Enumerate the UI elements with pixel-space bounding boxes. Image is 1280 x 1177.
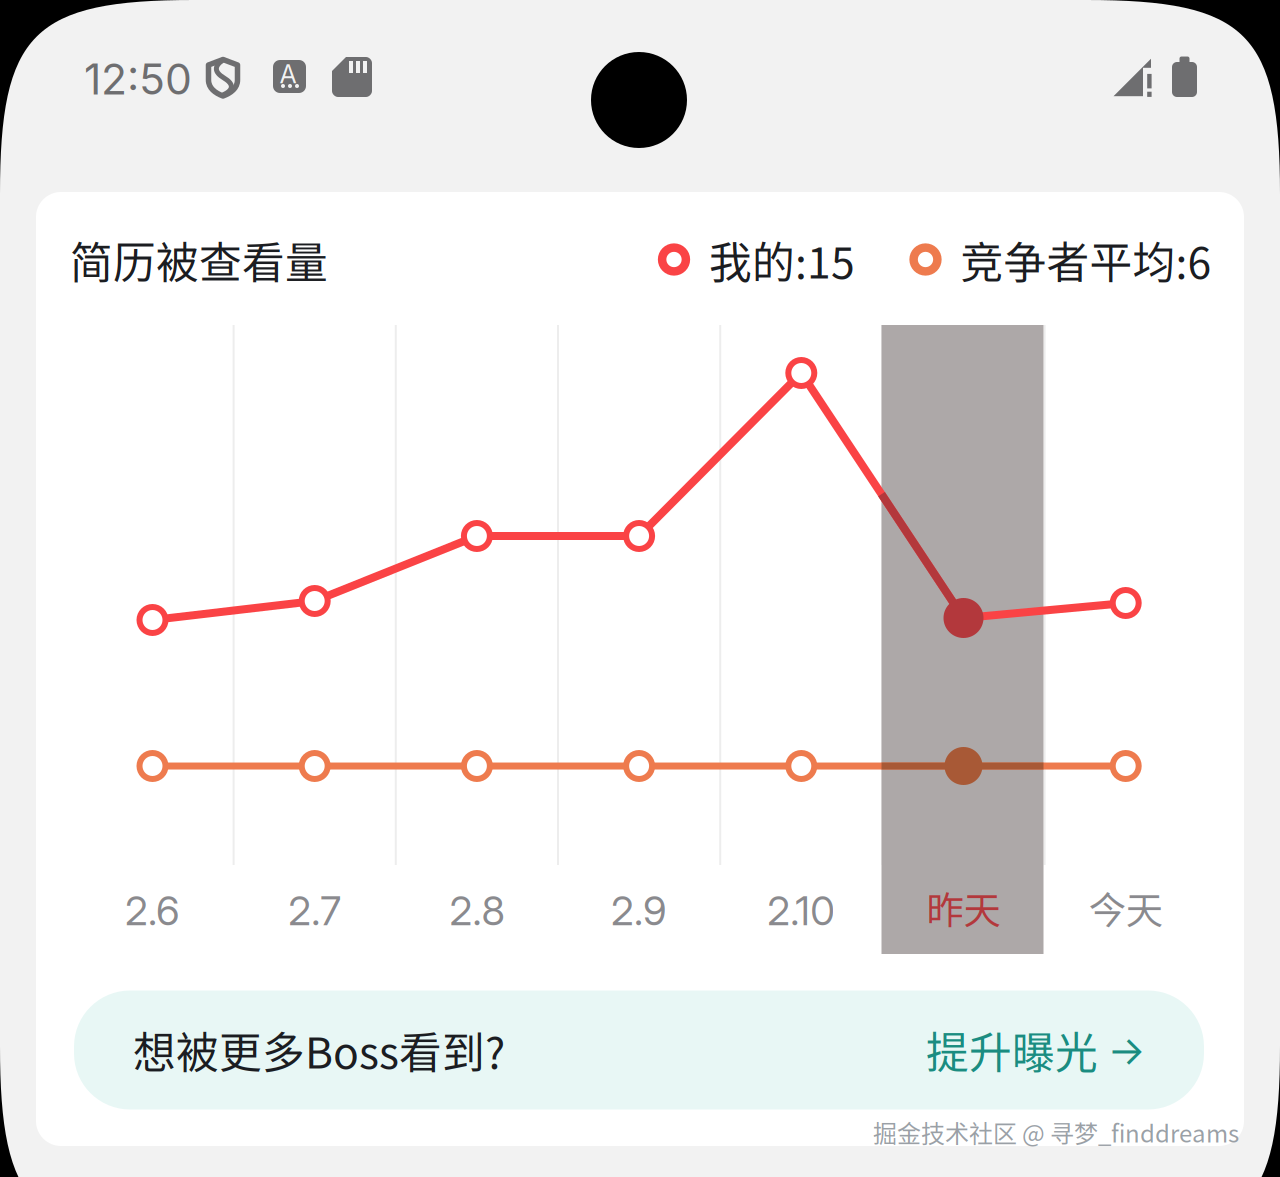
staticText: 2.10 [767,887,835,935]
staticText: 12:50 [84,53,192,105]
staticText: 2.8 [449,887,504,935]
staticText: A [279,59,296,89]
button[interactable]: 2.10 [720,325,882,954]
staticText: 2.6 [125,887,180,935]
staticText: 2.7 [288,887,341,935]
button[interactable]: 我的:15 [677,232,887,288]
button[interactable]: 2.7 [234,325,396,954]
staticText: 我的:15 [709,229,855,291]
button[interactable]: 想被更多Boss看到? [74,990,1204,1109]
staticText: 掘金技术社区 @ 寻梦_finddreams [873,1115,1239,1149]
staticText: 昨天 [926,881,1000,935]
button[interactable]: 2.8 [396,325,558,954]
button[interactable]: 2.6 [71,325,234,954]
button[interactable]: 昨天 [882,325,1045,954]
staticText: 竞争者平均:6 [960,229,1211,291]
button[interactable]: 竞争者平均:6 [936,232,1236,288]
button[interactable]: 今天 [1045,325,1207,954]
staticText: 简历被查看量 [70,229,328,291]
button[interactable]: 2.9 [558,325,720,954]
staticText: 想被更多Boss看到? [133,1019,505,1081]
staticText: 提升曝光 [926,1019,1098,1081]
staticText: → [1098,1026,1145,1074]
staticText: 今天 [1089,881,1163,935]
staticText: 2.9 [611,887,667,935]
